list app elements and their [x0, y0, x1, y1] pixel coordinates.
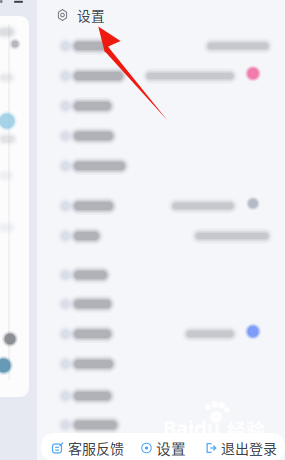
- button[interactable]: [37, 381, 285, 411]
- staticText: jingyan.baidu.com: [169, 433, 237, 444]
- button[interactable]: [37, 410, 285, 440]
- staticText: Baidu: [163, 414, 220, 441]
- staticText: 设置: [77, 5, 105, 25]
- button[interactable]: 退出登录: [205, 435, 283, 460]
- button[interactable]: 设置: [57, 5, 127, 25]
- staticText: 退出登录: [221, 438, 277, 458]
- button[interactable]: 设置: [141, 435, 186, 460]
- button[interactable]: [37, 91, 285, 121]
- button[interactable]: [37, 31, 285, 61]
- button[interactable]: [37, 260, 285, 290]
- staticText: 客服反馈: [68, 438, 124, 458]
- button[interactable]: [37, 121, 285, 151]
- staticText: 设置: [156, 437, 186, 459]
- button[interactable]: [37, 319, 285, 349]
- staticText: 经验: [227, 415, 265, 442]
- button[interactable]: [37, 151, 285, 181]
- button[interactable]: [37, 61, 285, 91]
- button[interactable]: 客服反馈: [52, 435, 130, 460]
- button[interactable]: [37, 349, 285, 379]
- button[interactable]: [37, 221, 285, 251]
- button[interactable]: [37, 191, 285, 221]
- button[interactable]: [37, 289, 285, 319]
